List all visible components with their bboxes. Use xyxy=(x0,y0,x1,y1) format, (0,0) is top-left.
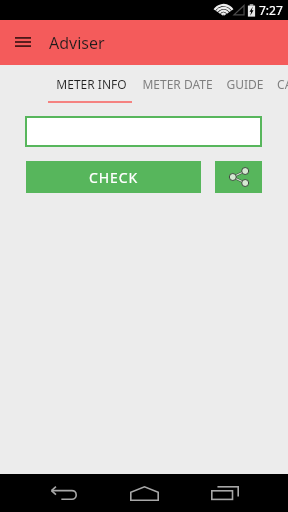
button[interactable]: Home xyxy=(116,474,173,512)
staticText: CHECK xyxy=(89,168,139,187)
button[interactable]: METER DATE xyxy=(133,65,221,103)
button[interactable]: Recent apps xyxy=(197,474,253,512)
button[interactable]: CHECK xyxy=(26,161,201,193)
button[interactable]: Share xyxy=(215,161,262,193)
staticText: METER INFO xyxy=(56,76,127,92)
staticText: METER DATE xyxy=(142,76,213,92)
button[interactable]: GUIDE xyxy=(221,65,269,103)
button[interactable]: METER INFO xyxy=(49,65,133,103)
staticText: CALC xyxy=(277,76,288,92)
button[interactable] xyxy=(25,116,262,147)
staticText: Adviser xyxy=(49,32,105,54)
staticText: 7:27 xyxy=(259,2,283,18)
staticText: GUIDE xyxy=(226,76,264,92)
button[interactable]: CALC xyxy=(267,65,288,103)
button[interactable]: Open navigation drawer xyxy=(7,26,39,58)
button[interactable]: Back xyxy=(35,474,91,512)
